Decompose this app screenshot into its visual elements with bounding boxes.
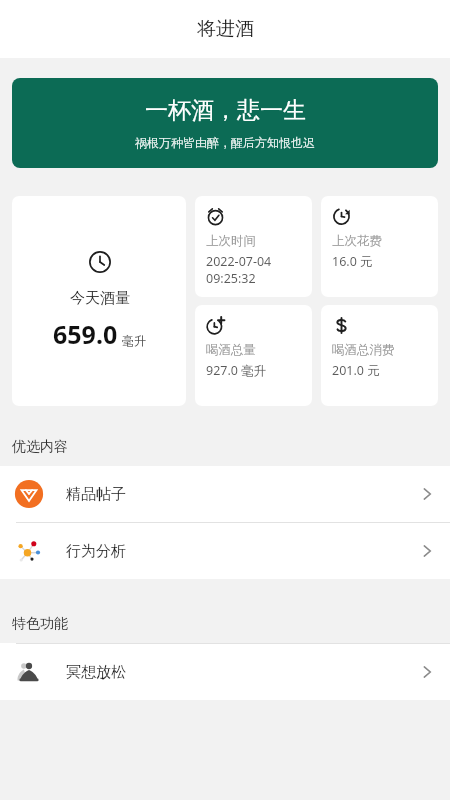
- staticText: 2022-07-04: [206, 253, 272, 270]
- button[interactable]: 一杯酒，悲一生: [12, 78, 438, 168]
- button[interactable]: 行为分析: [0, 523, 450, 579]
- staticText: 将进酒: [197, 17, 254, 41]
- button[interactable]: 精品帖子: [0, 466, 450, 522]
- staticText: 上次时间: [206, 233, 256, 249]
- staticText: 659.0: [53, 317, 118, 351]
- button[interactable]: 喝酒总消费: [321, 305, 438, 406]
- staticText: 09:25:32: [206, 270, 256, 287]
- staticText: 16.0 元: [332, 253, 373, 270]
- staticText: 201.0 元: [332, 362, 380, 379]
- staticText: 上次花费: [332, 233, 382, 249]
- staticText: 一杯酒，悲一生: [145, 96, 306, 125]
- staticText: 喝酒总消费: [332, 342, 395, 358]
- button[interactable]: 今天酒量: [12, 196, 186, 406]
- button[interactable]: 冥想放松: [0, 644, 450, 700]
- button[interactable]: 上次时间: [195, 196, 312, 297]
- staticText: 行为分析: [66, 542, 126, 561]
- staticText: 精品帖子: [66, 485, 126, 504]
- staticText: 祸根万种皆由醉，醒后方知恨也迟: [135, 135, 315, 150]
- staticText: 毫升: [122, 333, 146, 348]
- staticText: 特色功能: [12, 615, 68, 633]
- button[interactable]: 喝酒总量: [195, 305, 312, 406]
- button[interactable]: 上次花费: [321, 196, 438, 297]
- staticText: 927.0 毫升: [206, 362, 267, 379]
- staticText: 冥想放松: [66, 663, 126, 682]
- staticText: 今天酒量: [70, 289, 130, 308]
- staticText: 优选内容: [12, 438, 68, 456]
- staticText: 喝酒总量: [206, 342, 256, 358]
